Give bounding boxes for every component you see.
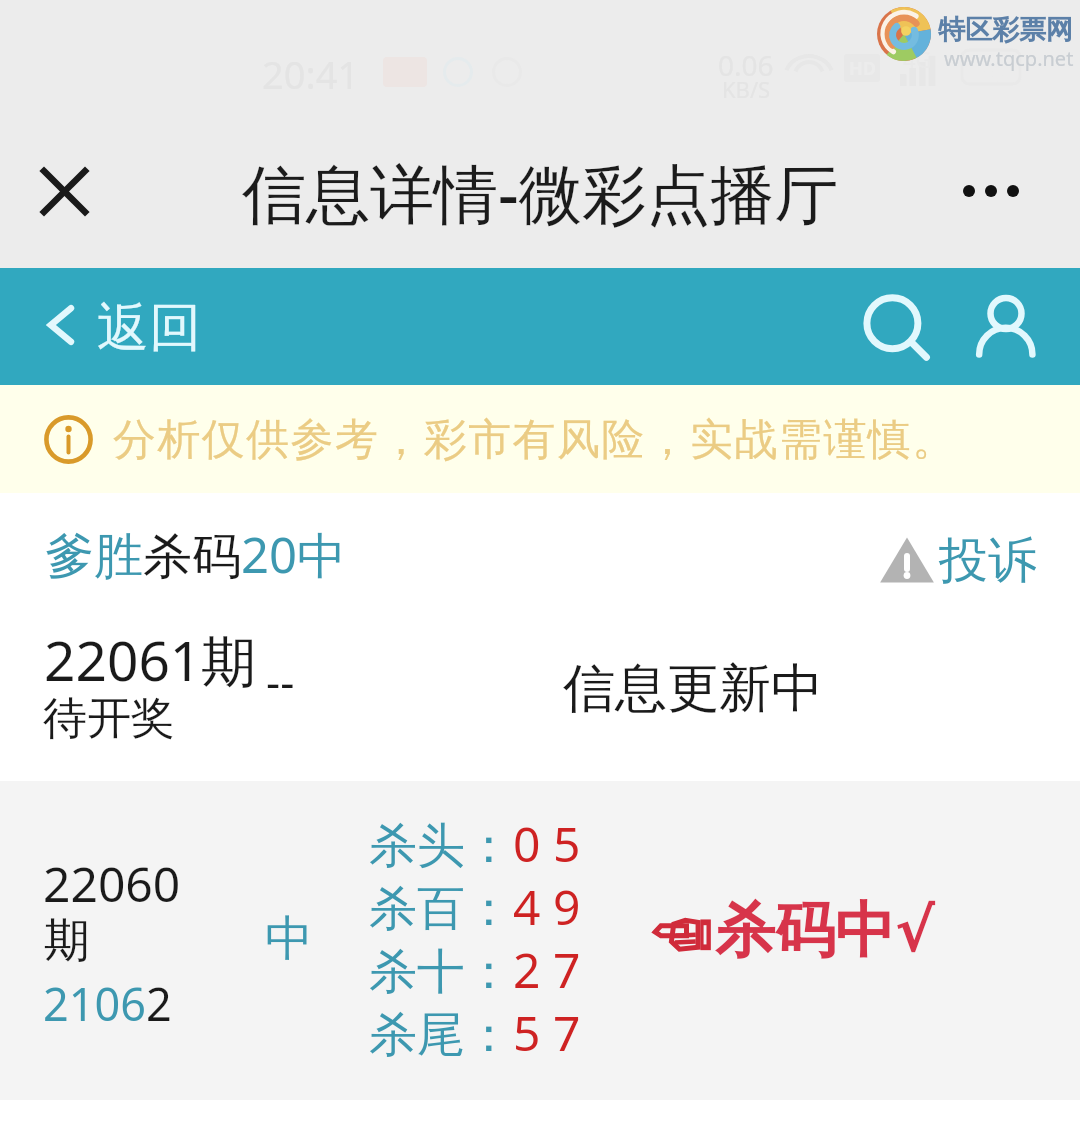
staticText: 78: [974, 54, 1004, 89]
staticText: 返回: [97, 295, 201, 361]
button[interactable]: 投诉: [879, 530, 1037, 592]
staticText: 杀头：0 5: [369, 811, 581, 877]
staticText: 分析仅供参考，彩市有风险，实战需谨慎。: [113, 413, 957, 467]
staticText: 杀码中√: [715, 893, 936, 969]
staticText: 期: [44, 912, 90, 970]
staticText: 待开奖: [43, 691, 175, 746]
staticText: 信息更新中: [563, 656, 823, 722]
button[interactable]: Account: [958, 280, 1050, 372]
button[interactable]: 返回: [34, 292, 201, 358]
staticText: 特区彩票网: [938, 13, 1073, 47]
staticText: 4G: [903, 44, 932, 74]
staticText: KB/S: [722, 74, 771, 104]
staticText: 爹胜杀码20中: [45, 521, 347, 588]
staticText: 22061期: [44, 622, 257, 697]
staticText: 杀十：2 7: [369, 937, 581, 1003]
staticText: 22060: [43, 851, 181, 916]
staticText: 投诉: [939, 530, 1037, 592]
staticText: --: [266, 651, 295, 711]
staticText: 中: [265, 909, 313, 969]
staticText: www.tqcp.net: [944, 45, 1074, 72]
staticText: 21062: [43, 973, 172, 1034]
staticText: 杀尾：5 7: [369, 1000, 581, 1066]
button[interactable]: Close: [20, 147, 108, 235]
staticText: 0.06: [718, 46, 774, 84]
staticText: 信息详情-微彩点播厅: [242, 149, 839, 236]
button[interactable]: More options: [947, 147, 1035, 235]
button[interactable]: Search: [848, 278, 944, 374]
staticText: 杀百：4 9: [369, 874, 581, 940]
